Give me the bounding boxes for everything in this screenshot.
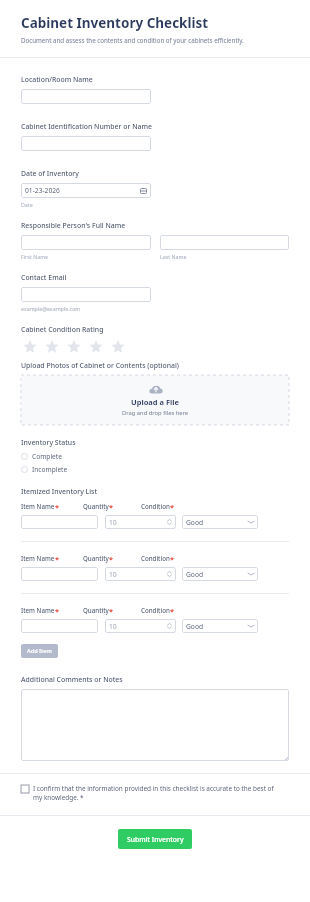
staticText: First Name (21, 253, 49, 260)
staticText: Location/Room Name (21, 75, 93, 84)
button[interactable]: Rate 2 stars (43, 338, 60, 355)
staticText: Item Name (21, 606, 55, 614)
button[interactable]: Condition (182, 567, 258, 581)
staticText: Quantity (83, 502, 109, 510)
staticText: Upload a File (131, 397, 180, 407)
staticText: Good (186, 570, 204, 579)
staticText: Drag and drop files here (122, 409, 189, 417)
staticText: Quantity (83, 554, 109, 562)
staticText: Last Name (160, 253, 187, 260)
staticText: Condition (141, 502, 170, 510)
staticText: * (55, 606, 60, 616)
button[interactable]: Add Item (21, 644, 58, 658)
button[interactable]: Item Name (21, 567, 98, 581)
staticText: Add Item (27, 647, 52, 655)
staticText: Cabinet Identification Number or Name (21, 122, 152, 131)
button[interactable]: Item Name (21, 619, 98, 633)
button[interactable]: Rate 5 stars (109, 338, 126, 355)
staticText: 10 (109, 518, 117, 527)
button[interactable]: Last Name (160, 235, 289, 250)
button[interactable]: First Name (21, 235, 151, 250)
button[interactable]: Additional Comments or Notes (21, 689, 289, 761)
staticText: Responsible Person's Full Name (21, 221, 126, 230)
staticText: Item Name (21, 502, 55, 510)
button[interactable]: Condition (182, 619, 258, 633)
button[interactable]: Quantity (105, 567, 176, 581)
staticText: * (170, 502, 175, 512)
staticText: * (170, 606, 175, 616)
staticText: * (109, 502, 114, 512)
button[interactable]: Rate 4 stars (87, 338, 104, 355)
button[interactable]: Cabinet Identification Number or Name (21, 136, 151, 151)
staticText: Upload Photos of Cabinet or Contents (op… (21, 361, 179, 370)
button[interactable]: Contact Email (21, 287, 151, 302)
staticText: Quantity (83, 606, 109, 614)
staticText: Cabinet Inventory Checklist (21, 14, 209, 32)
staticText: * (55, 554, 60, 564)
staticText: Additional Comments or Notes (21, 675, 123, 684)
staticText: 10 (109, 622, 117, 631)
staticText: * (170, 554, 175, 564)
button[interactable]: Item Name (21, 515, 98, 529)
staticText: Item Name (21, 554, 55, 562)
button[interactable]: Rate 3 stars (65, 338, 82, 355)
button[interactable]: Date of Inventory (21, 183, 151, 198)
staticText: I confirm that the information provided … (33, 784, 282, 802)
staticText: Contact Email (21, 273, 67, 282)
button[interactable]: Submit Inventory (118, 829, 192, 849)
button[interactable]: I confirm that the information provided … (21, 784, 282, 802)
button[interactable]: Location/Room Name (21, 89, 151, 104)
staticText: Condition (141, 606, 170, 614)
staticText: Inventory Status (21, 438, 76, 447)
button[interactable]: Incomplete (21, 463, 68, 476)
staticText: Itemized Inventory List (21, 487, 98, 496)
staticText: * (55, 502, 60, 512)
staticText: 01-23-2026 (25, 186, 60, 195)
staticText: Good (186, 518, 204, 527)
staticText: Submit Inventory (127, 835, 184, 844)
staticText: Date (21, 201, 33, 208)
staticText: example@example.com (21, 305, 81, 312)
button[interactable]: Upload a File (21, 375, 289, 425)
staticText: Complete (32, 452, 62, 461)
button[interactable]: Quantity (105, 515, 176, 529)
staticText: Document and assess the contents and con… (21, 36, 244, 44)
button[interactable]: Complete (21, 450, 62, 463)
button[interactable]: Condition (182, 515, 258, 529)
staticText: 10 (109, 570, 117, 579)
staticText: * (109, 606, 114, 616)
staticText: Incomplete (32, 465, 68, 474)
staticText: * (109, 554, 114, 564)
button[interactable]: Quantity (105, 619, 176, 633)
staticText: Condition (141, 554, 170, 562)
button[interactable]: Rate 1 stars (21, 338, 38, 355)
staticText: Good (186, 622, 204, 631)
staticText: Date of Inventory (21, 169, 79, 178)
staticText: Cabinet Condition Rating (21, 325, 104, 334)
